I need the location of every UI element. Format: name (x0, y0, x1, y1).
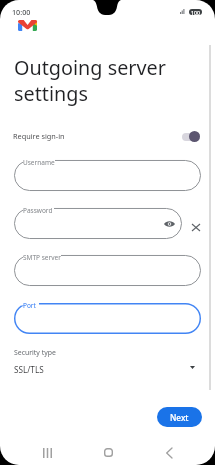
button[interactable]: Port (14, 303, 201, 334)
staticText: Password (23, 206, 53, 215)
staticText: 10:00 (12, 7, 31, 17)
button[interactable]: Security type (14, 343, 203, 377)
button[interactable]: Require sign-in (13, 125, 200, 147)
staticText: Require sign-in (13, 131, 65, 141)
button[interactable]: SMTP server (14, 255, 201, 286)
staticText: SMTP server (23, 253, 61, 262)
button[interactable]: Clear (190, 222, 201, 233)
button[interactable]: Show password (163, 218, 175, 230)
button[interactable]: Next (157, 407, 202, 427)
staticText: Security type (14, 348, 56, 357)
staticText: 100 (191, 9, 200, 15)
staticText: Port (23, 301, 36, 310)
button[interactable]: Recents (15, 437, 76, 465)
button[interactable]: Home (76, 437, 138, 465)
button[interactable]: Back (138, 437, 200, 465)
staticText: Outgoing server settings (14, 54, 166, 107)
staticText: Next (170, 412, 189, 423)
button[interactable]: Username (14, 160, 201, 191)
staticText: SSL/TLS (14, 364, 44, 375)
button[interactable]: Password (14, 208, 182, 239)
button[interactable]: Require sign-in toggle (182, 131, 200, 142)
staticText: Username (23, 158, 55, 167)
